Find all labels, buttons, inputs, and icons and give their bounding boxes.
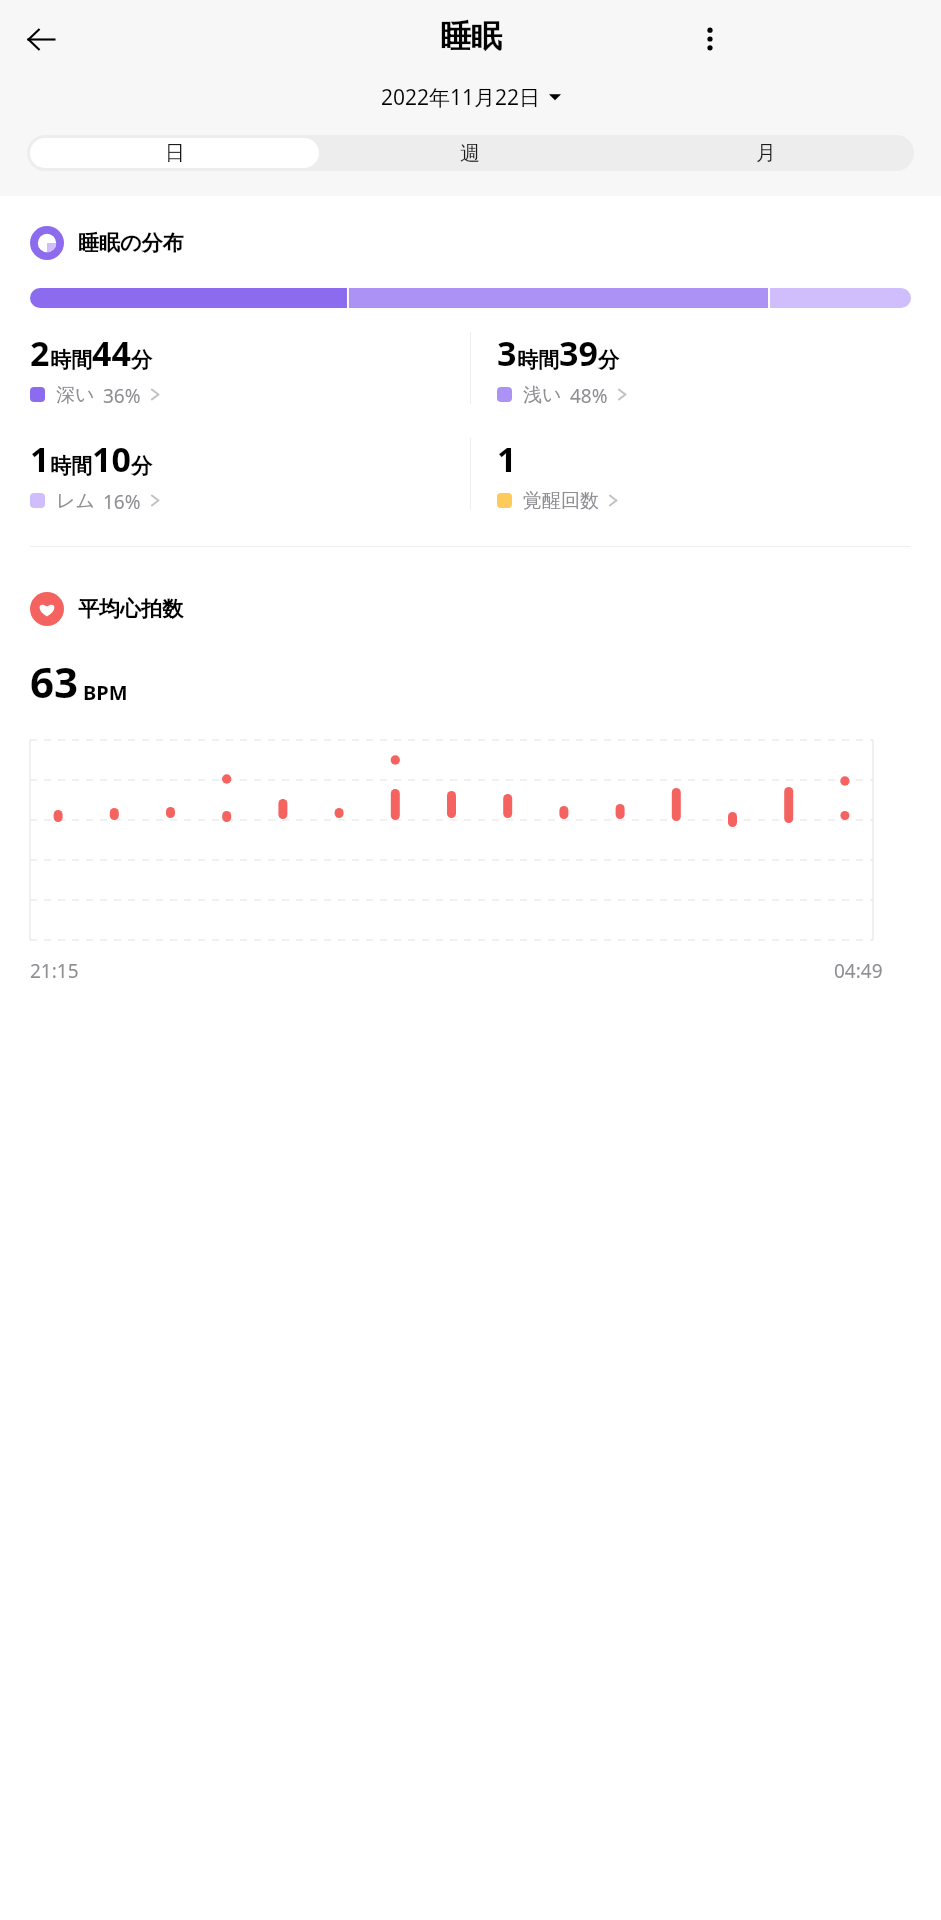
- button[interactable]: 2: [30, 330, 162, 406]
- staticText: 63: [30, 653, 79, 710]
- staticText: 1: [30, 436, 50, 482]
- staticText: 分: [598, 347, 619, 373]
- staticText: 36%: [103, 383, 141, 406]
- button[interactable]: 3: [497, 330, 629, 406]
- staticText: 分: [131, 453, 152, 479]
- staticText: BPM: [83, 679, 128, 706]
- staticText: 分: [131, 347, 152, 373]
- button[interactable]: More options: [683, 12, 737, 66]
- button[interactable]: 2022年11月22日: [0, 77, 941, 117]
- staticText: 時間: [50, 453, 92, 479]
- staticText: 48%: [570, 383, 608, 406]
- staticText: 月: [756, 141, 776, 166]
- staticText: 44: [92, 330, 131, 376]
- staticText: 10: [92, 436, 131, 482]
- staticText: 2: [30, 330, 50, 376]
- staticText: 覚醒回数: [523, 489, 599, 512]
- staticText: 1: [497, 436, 517, 482]
- staticText: 浅い: [523, 383, 562, 406]
- button[interactable]: 1: [497, 436, 620, 512]
- staticText: 2022年11月22日: [381, 83, 541, 112]
- button[interactable]: Back: [14, 12, 68, 66]
- button[interactable]: 日: [30, 138, 319, 168]
- button[interactable]: 週: [325, 138, 615, 168]
- staticText: 平均心拍数: [78, 596, 183, 622]
- staticText: 週: [460, 141, 480, 166]
- staticText: 04:49: [834, 958, 883, 984]
- button[interactable]: 月: [621, 138, 911, 168]
- button[interactable]: 1: [30, 436, 162, 512]
- staticText: 時間: [50, 347, 92, 373]
- staticText: レム: [56, 489, 95, 512]
- staticText: 16%: [103, 489, 141, 512]
- staticText: 39: [559, 330, 598, 376]
- staticText: 睡眠: [440, 17, 502, 56]
- staticText: 3: [497, 330, 517, 376]
- staticText: 日: [165, 141, 185, 166]
- staticText: 21:15: [30, 958, 79, 984]
- staticText: 深い: [56, 383, 95, 406]
- staticText: 時間: [517, 347, 559, 373]
- staticText: 睡眠の分布: [78, 230, 184, 256]
